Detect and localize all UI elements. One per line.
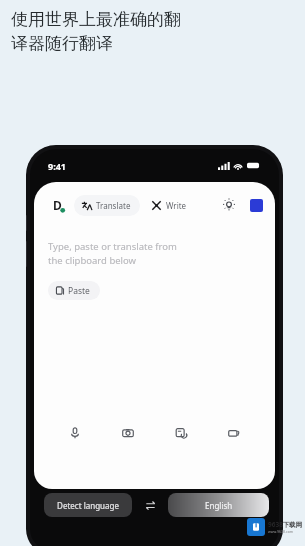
button[interactable]: Translate xyxy=(74,195,140,216)
staticText: Detect language xyxy=(57,500,119,511)
button[interactable]: Documents xyxy=(223,422,245,444)
staticText: 9:41 xyxy=(48,160,66,172)
staticText: 使用世界上最准确的翻 译器随行翻译 xyxy=(11,9,181,54)
staticText: English xyxy=(205,500,233,511)
staticText: Translate xyxy=(96,200,131,211)
staticText: D xyxy=(53,197,62,213)
staticText: Paste xyxy=(68,285,90,297)
button[interactable]: Tips xyxy=(220,196,238,214)
button[interactable]: Voice input xyxy=(64,422,86,444)
staticText: 9638下载网 xyxy=(268,520,303,529)
staticText: Type, paste or translate from the clipbo… xyxy=(48,240,177,267)
button[interactable]: Write xyxy=(149,195,189,216)
button[interactable]: DeepL xyxy=(46,194,68,216)
button[interactable]: Detect language xyxy=(44,493,132,517)
button[interactable]: Paste xyxy=(48,281,100,300)
button[interactable]: Account xyxy=(250,199,263,212)
staticText: www.9638.com xyxy=(268,529,294,534)
button[interactable]: Translate image xyxy=(170,422,192,444)
staticText: Write xyxy=(166,200,187,211)
button[interactable]: English xyxy=(168,493,269,517)
button[interactable]: Camera xyxy=(117,422,139,444)
button[interactable]: Swap languages xyxy=(142,497,158,513)
